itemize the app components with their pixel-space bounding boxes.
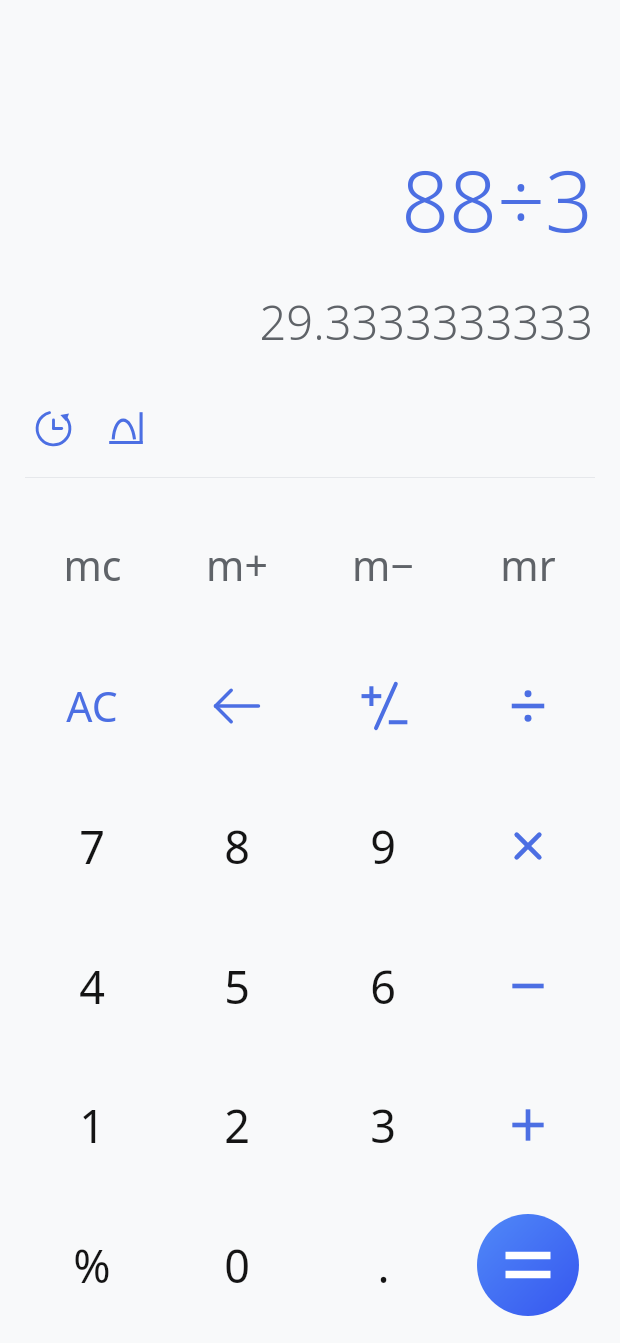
staticText: mc <box>63 537 122 593</box>
button[interactable]: 0 <box>167 1195 307 1335</box>
staticText: 1 <box>79 1095 105 1156</box>
button[interactable]: % <box>22 1195 162 1335</box>
staticText: 6 <box>370 956 396 1017</box>
button[interactable]: 8 <box>167 776 307 916</box>
button[interactable]: 4 <box>22 916 162 1056</box>
button[interactable]: 5 <box>167 916 307 1056</box>
staticText: 2 <box>224 1095 250 1156</box>
staticText: 0 <box>224 1235 250 1296</box>
staticText: mr <box>500 537 556 593</box>
button[interactable]: 1 <box>22 1055 162 1195</box>
button[interactable]: . <box>313 1195 453 1335</box>
button[interactable]: 2 <box>167 1055 307 1195</box>
staticText: m+ <box>206 537 268 593</box>
staticText: m− <box>352 537 414 593</box>
button[interactable]: Divide <box>458 636 598 776</box>
button[interactable]: Equals <box>477 1214 579 1316</box>
staticText: % <box>73 1235 111 1296</box>
button[interactable]: 3 <box>313 1055 453 1195</box>
staticText: 8 <box>224 816 250 877</box>
button[interactable]: mc <box>22 495 162 635</box>
staticText: . <box>377 1235 390 1296</box>
staticText: 88÷3 <box>401 142 593 256</box>
button[interactable]: 9 <box>313 776 453 916</box>
button[interactable]: AC <box>22 636 162 776</box>
staticText: 4 <box>79 956 105 1017</box>
staticText: 29.3333333333 <box>259 290 593 354</box>
button[interactable]: Plus minus <box>313 636 453 776</box>
button[interactable]: m+ <box>167 495 307 635</box>
staticText: 9 <box>370 816 396 877</box>
button[interactable]: Plus <box>458 1055 598 1195</box>
button[interactable]: Minus <box>458 916 598 1056</box>
button[interactable]: History <box>28 403 78 453</box>
button[interactable]: 6 <box>313 916 453 1056</box>
button[interactable]: Multiply <box>458 776 598 916</box>
staticText: 3 <box>370 1095 396 1156</box>
staticText: AC <box>66 678 118 734</box>
button[interactable]: 7 <box>22 776 162 916</box>
staticText: 5 <box>224 956 250 1017</box>
staticText: 7 <box>79 816 105 877</box>
button[interactable]: Graph <box>100 403 150 453</box>
button[interactable]: mr <box>458 495 598 635</box>
button[interactable]: m− <box>313 495 453 635</box>
button[interactable]: Backspace <box>167 636 307 776</box>
